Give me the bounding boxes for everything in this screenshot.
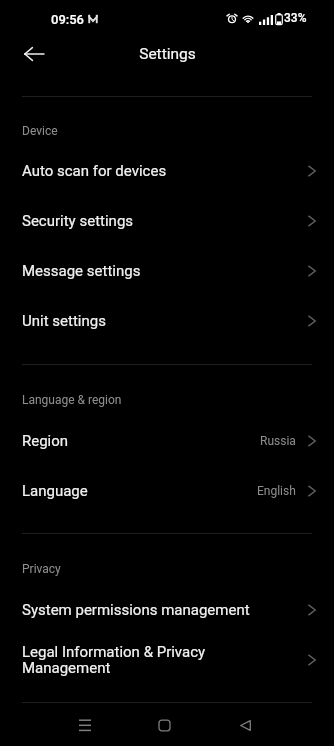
button[interactable]: Security settings <box>0 196 334 246</box>
button[interactable]: System permissions management <box>0 585 334 635</box>
button[interactable]: Back <box>223 703 267 746</box>
button[interactable]: Back <box>13 33 55 75</box>
staticText: Language <box>22 482 88 500</box>
staticText: 09:56 <box>51 12 85 27</box>
button[interactable]: Message settings <box>0 246 334 296</box>
staticText: Privacy <box>22 562 61 576</box>
staticText: Unit settings <box>22 312 106 330</box>
staticText: Russia <box>260 434 296 448</box>
staticText: Device <box>22 124 58 138</box>
button[interactable]: Recent apps <box>63 703 107 746</box>
button[interactable]: Legal Information & Privacy Management <box>0 630 334 690</box>
staticText: 33% <box>284 11 307 25</box>
button[interactable]: Region <box>0 416 334 466</box>
staticText: Auto scan for devices <box>22 162 167 180</box>
button[interactable]: Unit settings <box>0 296 334 346</box>
staticText: Message settings <box>22 262 141 280</box>
staticText: System permissions management <box>22 601 250 619</box>
button[interactable]: Home <box>142 703 186 746</box>
staticText: Security settings <box>22 212 134 230</box>
staticText: English <box>257 484 296 498</box>
staticText: Settings <box>139 45 196 63</box>
staticText: Region <box>22 432 69 450</box>
button[interactable]: Auto scan for devices <box>0 146 334 196</box>
staticText: Language & region <box>22 393 122 407</box>
staticText: Legal Information & Privacy Management <box>22 643 289 677</box>
button[interactable]: Language <box>0 466 334 516</box>
